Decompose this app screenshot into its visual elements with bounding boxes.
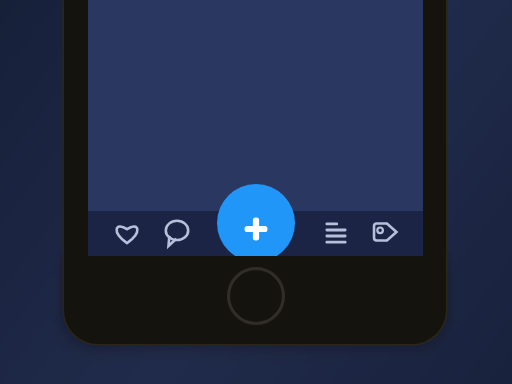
button[interactable]: Feed xyxy=(309,211,363,256)
button[interactable]: Home xyxy=(228,268,284,324)
button[interactable]: Likes xyxy=(100,211,154,256)
button[interactable]: Add xyxy=(217,184,295,256)
button[interactable]: Tags xyxy=(358,211,412,256)
button[interactable]: Comments xyxy=(150,211,204,256)
